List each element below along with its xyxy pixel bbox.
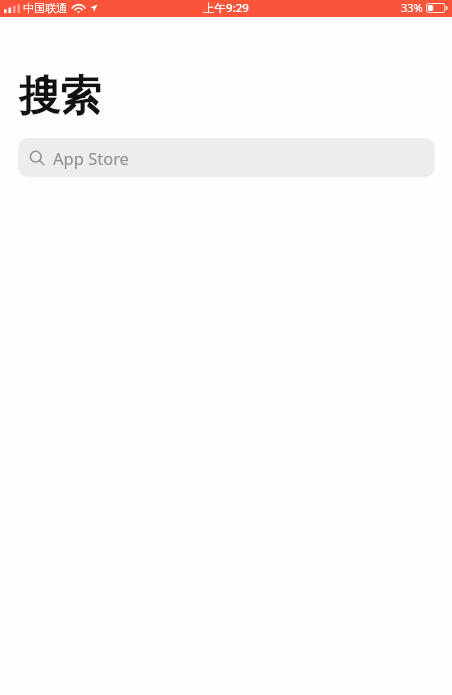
other: Search (29, 150, 45, 166)
button[interactable]: Search (18, 138, 435, 177)
staticText: 上午9:29 (203, 0, 249, 16)
staticText: 搜索 (19, 71, 101, 123)
staticText: App Store (53, 147, 129, 169)
staticText: 中国联通 (23, 1, 67, 15)
staticText: 33% (401, 0, 423, 15)
